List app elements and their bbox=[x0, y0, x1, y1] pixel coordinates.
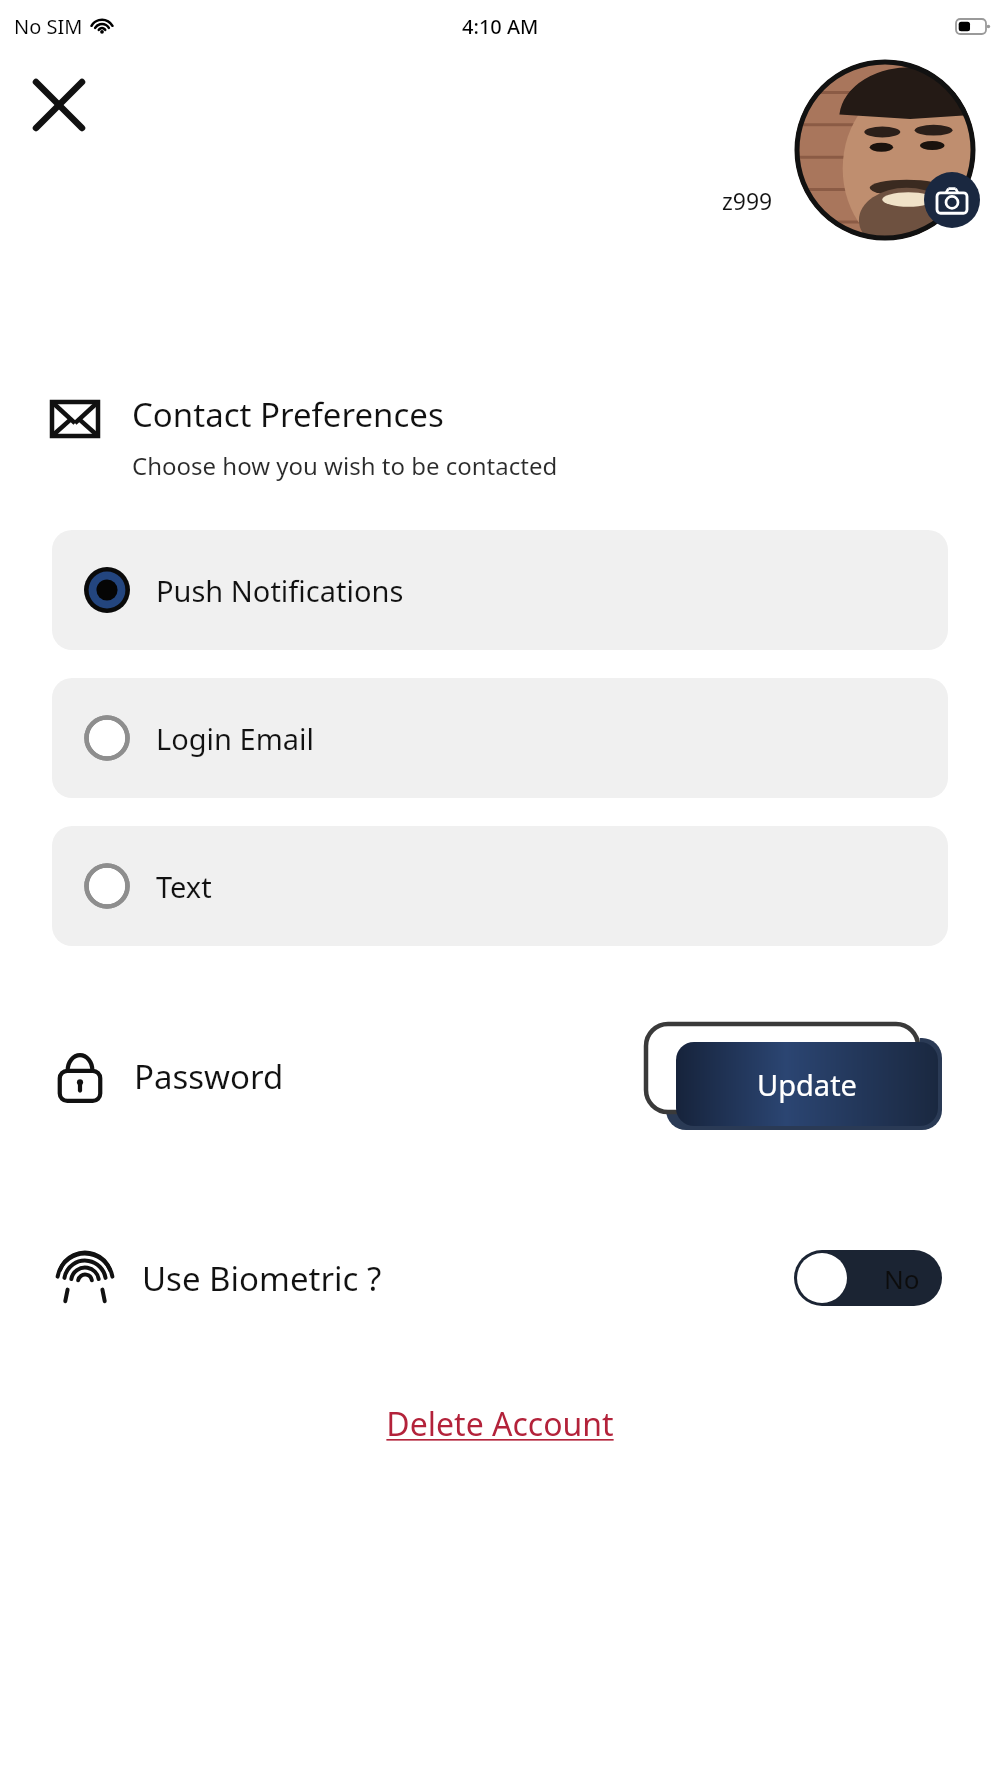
button[interactable]: Login Email bbox=[52, 678, 948, 798]
button[interactable]: Update bbox=[676, 1042, 938, 1126]
button[interactable]: Text bbox=[52, 826, 948, 946]
button[interactable]: Push Notifications bbox=[52, 530, 948, 650]
button[interactable]: Close bbox=[30, 76, 88, 134]
staticText: Update bbox=[757, 1065, 857, 1104]
staticText: Choose how you wish to be contacted bbox=[132, 449, 558, 482]
button[interactable]: Change profile photo bbox=[787, 60, 982, 242]
button[interactable]: Use Biometric toggle, off bbox=[794, 1250, 942, 1306]
staticText: Use Biometric ? bbox=[142, 1256, 382, 1301]
button[interactable]: Delete Account bbox=[368, 1394, 632, 1454]
staticText: No SIM bbox=[14, 13, 83, 40]
staticText: No bbox=[884, 1261, 920, 1296]
staticText: Push Notifications bbox=[156, 571, 404, 610]
staticText: 4:10 AM bbox=[462, 13, 539, 40]
staticText: Password bbox=[134, 1054, 284, 1099]
staticText: Contact Preferences bbox=[132, 392, 444, 437]
staticText: Text bbox=[156, 867, 212, 906]
staticText: z999 bbox=[722, 185, 773, 216]
staticText: Delete Account bbox=[386, 1402, 614, 1446]
staticText: Login Email bbox=[156, 719, 314, 758]
